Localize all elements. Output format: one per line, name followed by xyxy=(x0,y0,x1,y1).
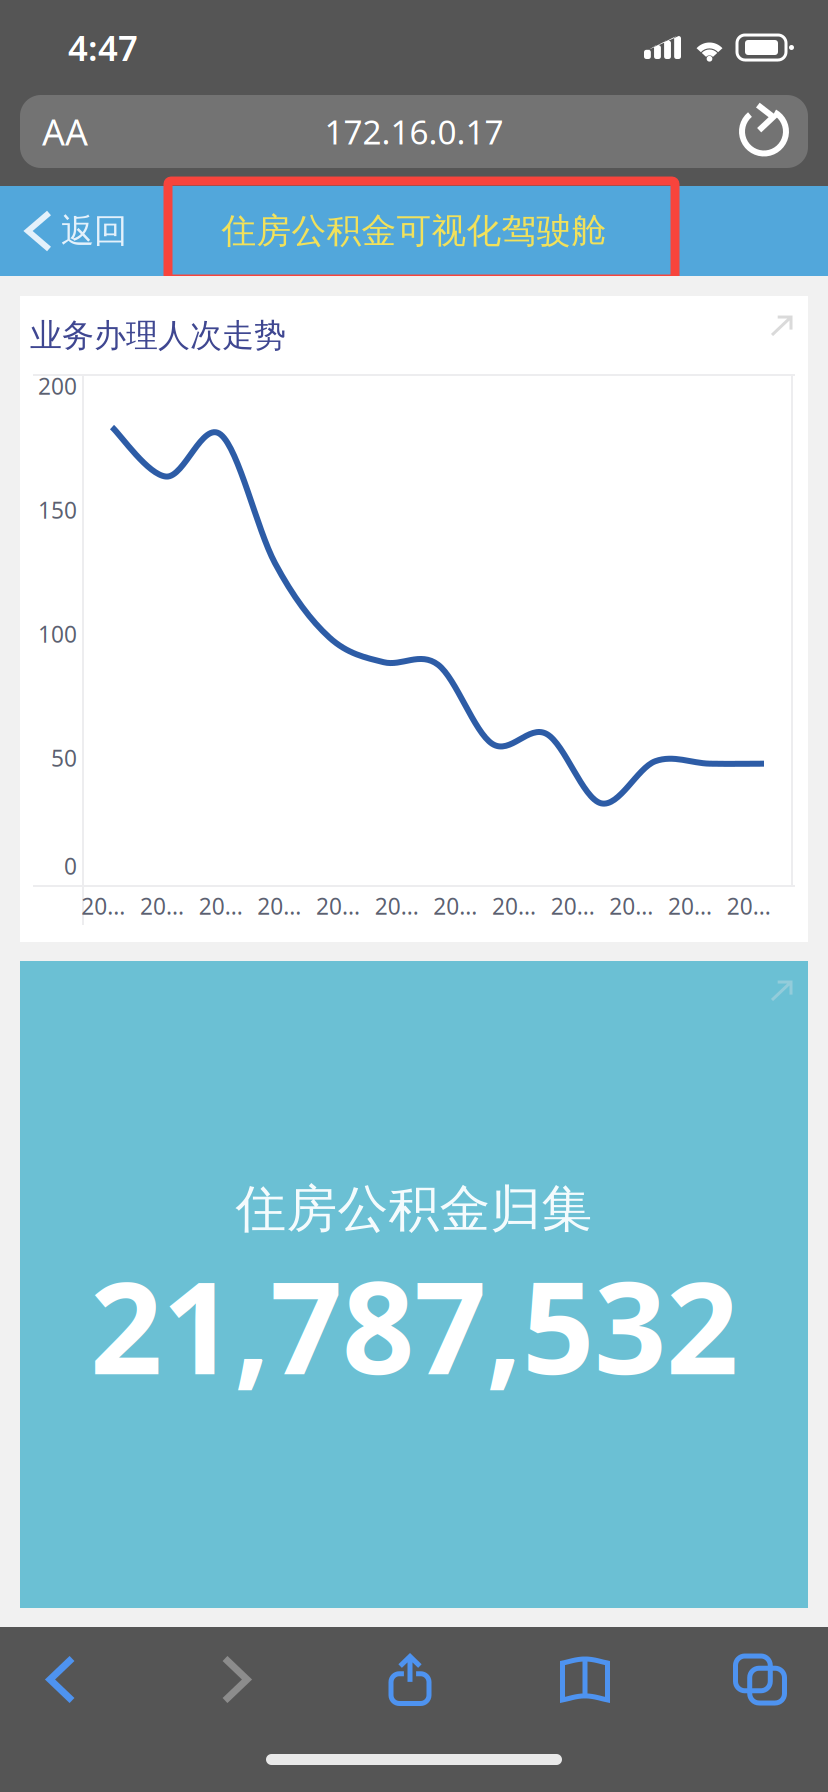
staticText: 20... xyxy=(316,891,360,921)
staticText: 20... xyxy=(81,891,125,921)
staticText: 0 xyxy=(64,851,77,881)
button[interactable]: Forward xyxy=(122,1627,350,1732)
staticText: 20... xyxy=(668,891,712,921)
staticText: 住房公积金可视化驾驶舱 xyxy=(221,210,606,252)
button[interactable]: Open 住房公积金归集 detail xyxy=(758,968,805,1014)
staticText: 4:47 xyxy=(68,24,138,70)
staticText: 20... xyxy=(257,891,301,921)
staticText: 20... xyxy=(140,891,184,921)
staticText: 20... xyxy=(609,891,653,921)
staticText: 150 xyxy=(38,495,77,525)
button[interactable]: Back xyxy=(0,1627,122,1732)
staticText: 50 xyxy=(51,743,77,773)
button[interactable]: Reload xyxy=(674,95,808,168)
staticText: 21,787,532 xyxy=(90,1241,738,1409)
staticText: 20... xyxy=(375,891,419,921)
staticText: 20... xyxy=(492,891,536,921)
button[interactable]: Tabs xyxy=(700,1627,820,1732)
button[interactable]: Share xyxy=(350,1627,470,1732)
staticText: AA xyxy=(42,108,88,155)
staticText: 20... xyxy=(551,891,595,921)
staticText: 返回 xyxy=(61,210,127,251)
button[interactable]: Page settings xyxy=(20,95,154,168)
staticText: 20... xyxy=(727,891,771,921)
staticText: 20... xyxy=(433,891,477,921)
staticText: 业务办理人次走势 xyxy=(30,316,286,355)
button[interactable]: 返回 xyxy=(0,188,127,273)
staticText: 100 xyxy=(38,619,77,649)
staticText: 172.16.0.17 xyxy=(324,109,503,154)
staticText: 200 xyxy=(38,371,77,401)
staticText: 20... xyxy=(199,891,243,921)
staticText: 住房公积金归集 xyxy=(235,1178,592,1240)
button[interactable]: Open 业务办理人次走势 detail xyxy=(758,303,805,349)
button[interactable]: Bookmarks xyxy=(470,1627,700,1732)
